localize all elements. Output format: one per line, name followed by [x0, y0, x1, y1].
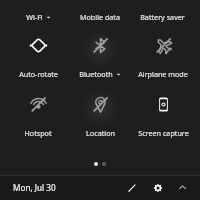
button[interactable]: Battery saver [129, 12, 195, 22]
staticText: Screen capture [138, 128, 189, 138]
button[interactable]: Collapse [175, 180, 190, 195]
staticText: Wi-Fi [26, 12, 43, 22]
button[interactable]: Auto-rotate [6, 36, 70, 72]
staticText: Bluetooth [79, 69, 113, 79]
staticText: Hotspot [24, 128, 52, 138]
staticText: Auto-rotate [19, 69, 58, 79]
staticText: Location [86, 128, 115, 138]
button[interactable]: Settings [150, 180, 165, 195]
button[interactable]: Bluetooth [68, 36, 132, 72]
button[interactable]: Mobile data [68, 12, 132, 22]
staticText: Airplane mode [138, 69, 188, 79]
button[interactable]: Location [68, 95, 132, 131]
staticText: Battery saver [140, 12, 185, 22]
staticText: Mon, Jul 30 [13, 182, 56, 193]
button[interactable]: Screen capture [131, 95, 195, 131]
button[interactable]: Edit tiles [124, 180, 139, 195]
button[interactable]: Airplane mode [131, 36, 195, 72]
button[interactable]: Hotspot [6, 95, 70, 131]
button[interactable]: Wi-Fi [6, 12, 70, 22]
staticText: Mobile data [80, 12, 120, 22]
